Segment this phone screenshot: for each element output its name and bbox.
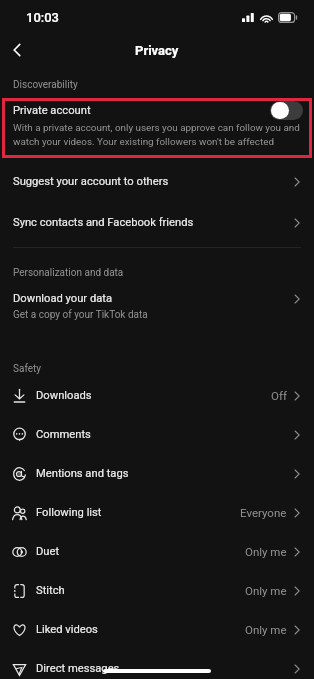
- button[interactable]: Direct messages: [0, 649, 314, 679]
- staticText: Mentions and tags: [36, 467, 129, 480]
- staticText: Suggest your account to others: [13, 175, 169, 188]
- button[interactable]: Back: [0, 34, 34, 66]
- staticText: Following list: [36, 506, 102, 519]
- staticText: With a private account, only users you a…: [13, 122, 303, 147]
- staticText: Off: [271, 389, 287, 402]
- staticText: Direct messages: [36, 662, 120, 675]
- staticText: Download your data: [13, 292, 113, 305]
- staticText: 10:03: [26, 10, 59, 25]
- button[interactable]: Liked videos: [0, 610, 314, 649]
- button[interactable]: Stitch: [0, 571, 314, 610]
- button[interactable]: Sync contacts and Facebook friends: [0, 203, 314, 242]
- button[interactable]: Duet: [0, 532, 314, 571]
- staticText: Privacy: [135, 43, 179, 58]
- staticText: Personalization and data: [13, 267, 124, 279]
- staticText: Downloads: [36, 389, 92, 402]
- staticText: Get a copy of your TikTok data: [13, 309, 148, 321]
- staticText: Only me: [245, 584, 287, 597]
- staticText: Stitch: [36, 584, 65, 597]
- staticText: Duet: [36, 545, 60, 558]
- staticText: Liked videos: [36, 623, 98, 636]
- button[interactable]: Following list: [0, 493, 314, 532]
- button[interactable]: Private account: [2, 98, 312, 158]
- staticText: Comments: [36, 428, 91, 441]
- button[interactable]: Mentions and tags: [0, 454, 314, 493]
- button[interactable]: Comments: [0, 415, 314, 454]
- staticText: Safety: [13, 363, 42, 375]
- staticText: Everyone: [240, 506, 287, 519]
- staticText: Only me: [245, 623, 287, 636]
- button[interactable]: Suggest your account to others: [0, 162, 314, 201]
- staticText: Private account: [13, 104, 91, 117]
- staticText: Sync contacts and Facebook friends: [13, 216, 194, 229]
- staticText: Only me: [245, 545, 287, 558]
- button[interactable]: Downloads: [0, 376, 314, 415]
- staticText: Discoverability: [13, 79, 78, 91]
- button[interactable]: Download your data: [0, 288, 314, 321]
